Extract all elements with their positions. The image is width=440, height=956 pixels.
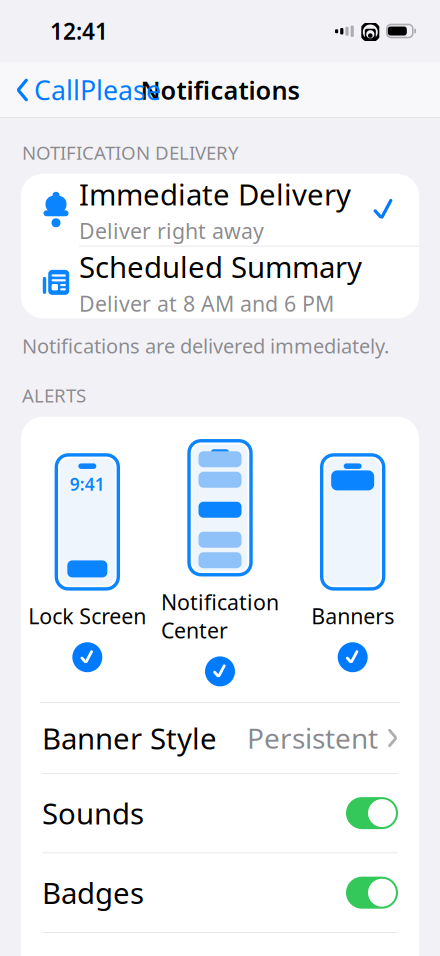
- staticText: ALERTS: [22, 383, 86, 408]
- staticText: 9:41: [70, 472, 105, 495]
- staticText: Badges: [42, 873, 144, 912]
- button[interactable]: Banners: [286, 453, 419, 672]
- staticText: NOTIFICATION DELIVERY: [22, 140, 239, 165]
- staticText: Notification Center: [161, 588, 279, 644]
- staticText: Banner Style: [42, 718, 217, 757]
- button[interactable]: Immediate Delivery: [21, 174, 419, 246]
- staticText: Banners: [311, 602, 394, 630]
- staticText: Deliver at 8 AM and 6 PM: [79, 289, 334, 317]
- staticText: Deliver right away: [79, 217, 264, 245]
- staticText: Immediate Delivery: [79, 175, 351, 214]
- staticText: Notifications: [140, 73, 299, 107]
- button[interactable]: 9:41: [21, 453, 154, 672]
- button[interactable]: Notification Center: [154, 439, 286, 686]
- staticText: Notifications are delivered immediately.: [22, 332, 389, 359]
- staticText: 12:41: [50, 16, 108, 46]
- button[interactable]: Badges: [21, 853, 419, 932]
- button[interactable]: CallPlease: [0, 64, 161, 116]
- staticText: Sounds: [42, 794, 144, 833]
- button[interactable]: Scheduled Summary: [21, 246, 419, 318]
- staticText: Lock Screen: [28, 602, 146, 630]
- staticText: Scheduled Summary: [79, 247, 362, 286]
- button[interactable]: Sounds: [21, 774, 419, 853]
- button[interactable]: Banner Style: [21, 703, 419, 773]
- staticText: Persistent: [247, 719, 378, 757]
- staticText: CallPlease: [34, 72, 161, 108]
